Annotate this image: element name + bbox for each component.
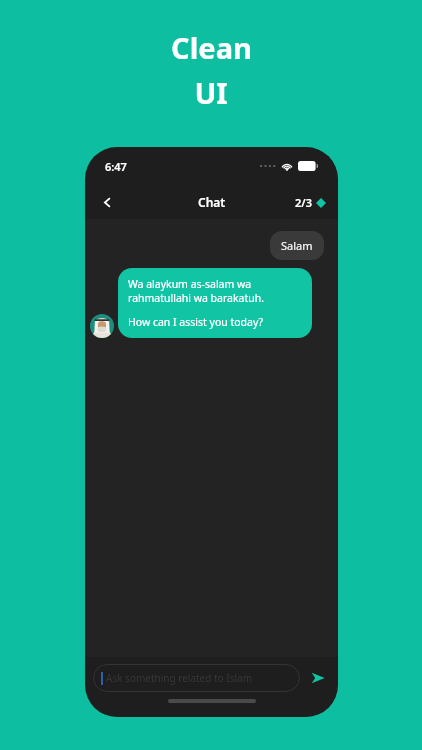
button[interactable]: Ask something related to Islam — [93, 664, 300, 692]
staticText: Wa alaykum as-salam wa rahmatullahi wa b… — [128, 277, 302, 305]
staticText: How can I assist you today? — [128, 315, 264, 329]
button[interactable]: Send — [308, 668, 328, 688]
button[interactable]: Back — [91, 186, 123, 218]
staticText: Ask something related to Islam — [106, 671, 252, 685]
staticText: Salam — [281, 238, 313, 253]
staticText: 2/3 — [295, 195, 312, 210]
staticText: UI — [194, 73, 228, 112]
button[interactable]: Wa alaykum as-salam wa rahmatullahi wa b… — [118, 268, 312, 338]
button[interactable]: Assistant avatar — [90, 314, 114, 338]
other: Credits — [316, 198, 326, 208]
staticText: 6:47 — [105, 159, 127, 174]
staticText: Clean — [171, 28, 252, 67]
button[interactable]: Salam — [270, 231, 324, 260]
button[interactable]: 2/3 — [295, 195, 326, 210]
staticText: Chat — [198, 194, 226, 210]
